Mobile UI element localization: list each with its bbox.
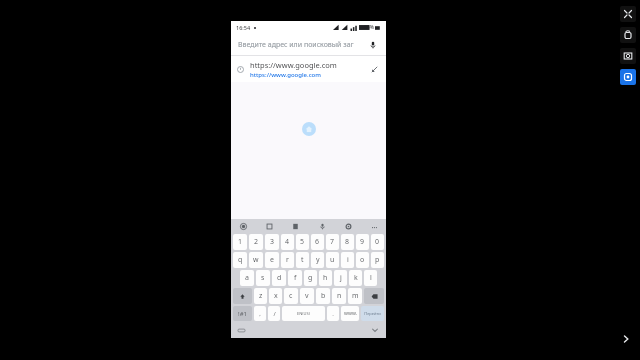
button[interactable]: b [316,288,330,304]
staticText: d [277,273,282,283]
button[interactable]: 0 [371,234,384,250]
staticText: . [332,310,334,318]
staticText: h [323,273,328,283]
button[interactable]: n [332,288,346,304]
button[interactable]: p [371,252,384,268]
button[interactable]: 7 [326,234,339,250]
button[interactable]: c [284,288,298,304]
button[interactable]: Rotate [620,27,636,43]
button[interactable]: Translate [289,220,301,232]
button[interactable]: z [254,288,267,304]
button[interactable]: / [268,306,280,321]
staticText: Введите адрес или поисковый заг [238,40,354,50]
staticText: 7 [330,237,335,247]
button[interactable]: 6 [311,234,324,250]
staticText: o [360,255,365,265]
button[interactable]: Введите адрес или поисковый заг [231,34,386,56]
staticText: c [289,291,293,301]
button[interactable]: !#1 [233,306,252,321]
button[interactable]: u [326,252,339,268]
staticText: l [370,273,372,283]
button[interactable]: . [327,306,339,321]
button[interactable]: Backspace [364,288,384,304]
button[interactable]: l [364,270,377,286]
button[interactable]: f [288,270,302,286]
staticText: !#1 [238,310,247,318]
staticText: 5 [300,237,305,247]
button[interactable]: EN(US) [282,306,325,321]
button[interactable]: g [304,270,317,286]
staticText: b [321,291,326,301]
button[interactable]: i [341,252,354,268]
button[interactable]: d [272,270,286,286]
staticText: https://www.google.com [250,71,321,79]
staticText: https://www.google.com [250,60,337,70]
staticText: 86% [364,24,374,31]
button[interactable]: v [300,288,314,304]
button[interactable]: Voice search [367,39,379,51]
button[interactable]: Next [617,330,635,348]
staticText: , [259,310,261,318]
button[interactable]: Emoji [237,220,249,232]
button[interactable]: Mirror display [620,69,636,85]
staticText: 8 [345,237,350,247]
button[interactable]: Settings [342,220,354,232]
button[interactable]: h [319,270,332,286]
button[interactable]: Voice input [316,220,328,232]
staticText: 6 [315,237,320,247]
button[interactable]: x [269,288,282,304]
button[interactable]: w [249,252,263,268]
button[interactable]: 9 [356,234,369,250]
button[interactable]: k [349,270,362,286]
button[interactable]: a [240,270,254,286]
button[interactable]: m [348,288,362,304]
button[interactable]: t [296,252,309,268]
staticText: x [274,291,278,301]
button[interactable]: , [254,306,266,321]
staticText: EN(US) [297,311,310,316]
button[interactable]: Clipboard [263,220,275,232]
button[interactable]: Перейти [361,306,384,321]
staticText: s [261,273,265,283]
staticText: k [354,273,358,283]
staticText: v [305,291,309,301]
staticText: t [301,255,304,265]
staticText: Перейти [364,311,381,316]
button[interactable]: Shift [233,288,252,304]
staticText: a [245,273,249,283]
button[interactable]: r [281,252,294,268]
staticText: q [238,255,243,265]
button[interactable]: q [233,252,247,268]
button[interactable]: 1 [233,234,247,250]
button[interactable]: Hide keyboard [369,324,381,336]
button[interactable]: Insert suggestion [368,63,380,75]
button[interactable]: o [356,252,369,268]
staticText: z [259,291,263,301]
button[interactable]: j [334,270,347,286]
button[interactable]: More [368,220,380,232]
staticText: 2 [254,237,259,247]
button[interactable]: 3 [265,234,279,250]
staticText: 3 [270,237,275,247]
staticText: u [330,255,335,265]
button[interactable]: e [265,252,279,268]
staticText: e [270,255,274,265]
staticText: i [347,255,349,265]
button[interactable]: Screenshot [620,48,636,64]
button[interactable]: s [256,270,270,286]
button[interactable]: y [311,252,324,268]
button[interactable]: 2 [249,234,263,250]
staticText: g [308,273,313,283]
button[interactable]: 8 [341,234,354,250]
staticText: p [375,255,380,265]
staticText: 1 [238,237,243,247]
staticText: r [286,255,289,265]
button[interactable]: https://www.google.com [231,56,386,82]
staticText: j [340,273,342,283]
staticText: n [337,291,342,301]
button[interactable]: Collapse [620,6,636,22]
button[interactable]: 4 [281,234,294,250]
button[interactable]: www. [341,306,359,321]
button[interactable]: 5 [296,234,309,250]
button[interactable]: Keyboard layout [236,325,246,335]
